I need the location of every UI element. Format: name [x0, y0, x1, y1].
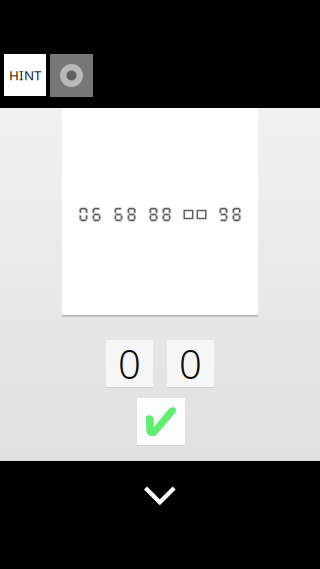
staticText: 0	[118, 337, 141, 390]
button[interactable]: Close	[100, 466, 220, 526]
staticText: 0	[179, 337, 202, 390]
button[interactable]: 0	[106, 340, 153, 387]
button[interactable]: Inspect tool	[50, 54, 93, 97]
button[interactable]: HINT	[4, 54, 46, 96]
staticText: HINT	[9, 66, 41, 84]
button[interactable]: Submit code	[137, 398, 185, 445]
button[interactable]: 0	[167, 340, 214, 387]
